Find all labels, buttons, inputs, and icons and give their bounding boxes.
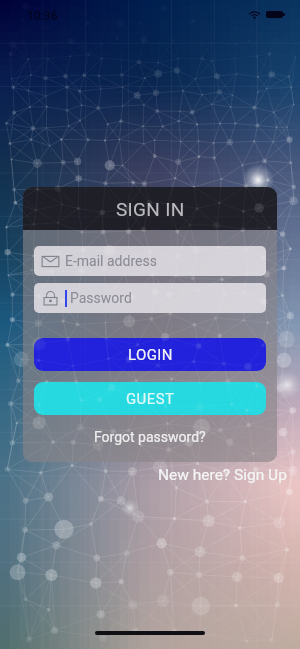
other: Wi-Fi: [248, 10, 261, 19]
staticText: Forgot password?: [94, 429, 206, 445]
button[interactable]: GUEST: [34, 382, 266, 415]
button[interactable]: E-mail address: [34, 246, 266, 276]
staticText: LOGIN: [128, 346, 173, 364]
button[interactable]: LOGIN: [34, 338, 266, 371]
other: Battery: [266, 11, 283, 18]
staticText: GUEST: [126, 390, 175, 408]
staticText: 10:36: [27, 9, 58, 23]
button[interactable]: Forgot password?: [23, 426, 277, 448]
staticText: E-mail address: [65, 253, 157, 269]
staticText: SIGN IN: [116, 198, 185, 220]
button[interactable]: New here? Sign Up: [158, 466, 287, 484]
staticText: New here? Sign Up: [158, 466, 287, 484]
staticText: Password: [70, 290, 132, 306]
button[interactable]: Password: [34, 283, 266, 313]
